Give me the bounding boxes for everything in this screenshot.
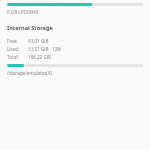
staticText: Used: (7, 0, 20, 2)
staticText: Used: (7, 46, 20, 52)
staticText: 12% (52, 46, 62, 52)
staticText: 106.22 GiB (28, 54, 52, 60)
button[interactable]: 6 GB LPDDR4X (7, 9, 39, 15)
staticText: 13.21 GiB (28, 46, 49, 52)
button[interactable]: Total: (7, 54, 143, 60)
staticText: Total: (7, 54, 19, 60)
button[interactable]: Internal Storage (7, 24, 53, 32)
button[interactable]: Used: (7, 46, 143, 52)
staticText: Free: (7, 38, 18, 44)
button[interactable]: Free: (7, 38, 143, 44)
staticText: 3.81 GiB 63% (28, 0, 57, 2)
button[interactable]: /storage/emulated/0 (7, 70, 52, 76)
staticText: 93.01 GiB (28, 38, 49, 44)
